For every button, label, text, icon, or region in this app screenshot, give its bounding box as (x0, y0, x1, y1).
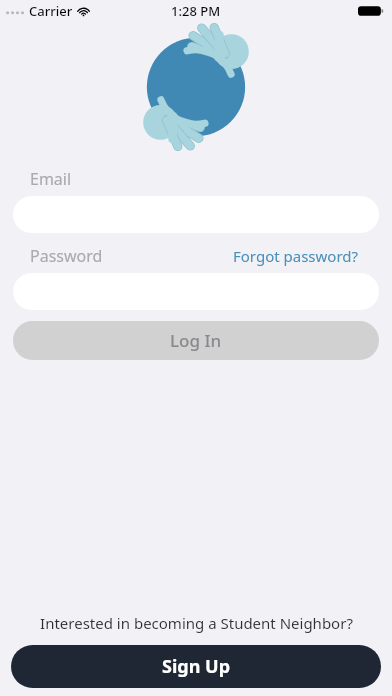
staticText: Forgot password? (233, 246, 359, 266)
other: App logo (142, 33, 250, 141)
staticText: 1:28 PM (171, 2, 221, 20)
staticText: Sign Up (162, 654, 231, 679)
staticText: Log In (170, 329, 222, 352)
staticText: Password (30, 245, 103, 267)
button[interactable]: Log In (13, 321, 379, 360)
staticText: Email (30, 168, 72, 190)
button[interactable]: Sign Up (11, 645, 381, 688)
staticText: Carrier (29, 2, 73, 20)
staticText: Interested in becoming a Student Neighbo… (40, 613, 353, 633)
button[interactable]: Forgot password? (233, 246, 359, 266)
